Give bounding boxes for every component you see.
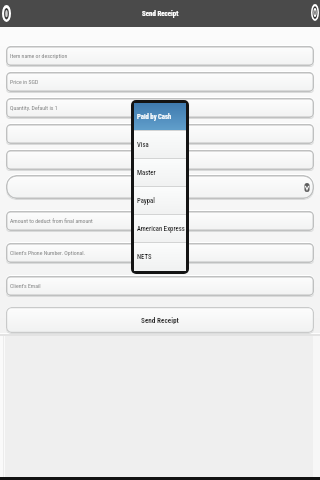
staticText: Send Receipt: [141, 316, 179, 324]
staticText: Client's Email: [10, 283, 41, 290]
staticText: Send Receipt: [142, 10, 179, 18]
staticText: Price in SGD: [10, 79, 39, 86]
button[interactable]: Open payment method list: [6, 175, 314, 199]
staticText: Amount to deduct from final amount: [10, 218, 93, 225]
button[interactable]: Navigate up: [0, 0, 14, 27]
button[interactable]: Paid by Cash: [134, 103, 186, 131]
button[interactable]: Item name or description: [6, 46, 314, 66]
staticText: Paid by Cash: [137, 113, 172, 121]
staticText: American Express: [137, 225, 185, 233]
staticText: Master: [137, 169, 156, 177]
staticText: Item name or description: [10, 53, 68, 60]
button[interactable]: Paypal: [134, 187, 186, 215]
button[interactable]: Client's Phone Number. Optional.: [6, 243, 314, 263]
button[interactable]: Master: [134, 159, 186, 187]
button[interactable]: Client's Email: [6, 276, 314, 296]
button[interactable]: [6, 150, 314, 170]
button[interactable]: [6, 124, 314, 144]
staticText: NETS: [137, 253, 152, 261]
staticText: Paypal: [137, 197, 155, 205]
button[interactable]: More options: [306, 0, 320, 27]
button[interactable]: NETS: [134, 243, 186, 271]
staticText: Client's Phone Number. Optional.: [10, 250, 86, 257]
button[interactable]: Amount to deduct from final amount: [6, 211, 314, 231]
button[interactable]: American Express: [134, 215, 186, 243]
button[interactable]: Quantity. Default is 1: [6, 98, 314, 118]
button[interactable]: Price in SGD: [6, 72, 314, 92]
button[interactable]: Open payment method list: [304, 182, 310, 193]
staticText: Visa: [137, 141, 149, 149]
button[interactable]: Visa: [134, 131, 186, 159]
staticText: Quantity. Default is 1: [10, 105, 58, 112]
button[interactable]: Send Receipt: [6, 307, 314, 333]
